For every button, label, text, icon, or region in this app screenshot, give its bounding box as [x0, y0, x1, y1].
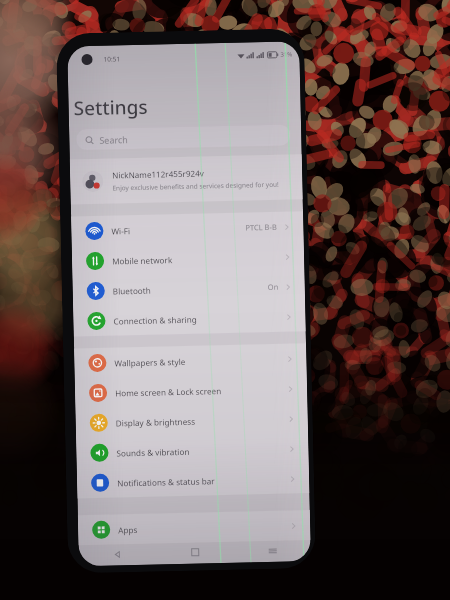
staticText: 10:51	[103, 54, 121, 64]
staticText: Apps	[118, 524, 138, 535]
button[interactable]: Connection & sharing	[73, 301, 306, 336]
button[interactable]: Mobile network	[72, 241, 304, 276]
staticText: Enjoy exclusive benefits and services de…	[112, 180, 279, 192]
button[interactable]: Wi-Fi	[71, 211, 304, 246]
button[interactable]: Wallpapers & style	[74, 343, 307, 378]
button[interactable]: Bluetooth	[72, 271, 305, 306]
staticText: On	[268, 282, 279, 292]
button[interactable]: Home screen & Lock screen	[75, 373, 307, 408]
button[interactable]: Display & brightness	[75, 403, 308, 438]
staticText: Wallpapers & style	[114, 356, 185, 368]
staticText: Settings	[73, 94, 148, 121]
staticText: Wi-Fi	[111, 225, 130, 236]
button[interactable]: Search	[76, 124, 290, 150]
staticText: Search	[99, 133, 128, 146]
button[interactable]: Notifications & status bar	[77, 463, 309, 498]
button[interactable]: Back	[78, 540, 157, 566]
button[interactable]: Sounds & vibration	[76, 433, 309, 468]
staticText: Display & brightness	[116, 416, 196, 428]
staticText: 31%	[280, 50, 293, 59]
staticText: Sounds & vibration	[116, 446, 189, 458]
staticText: NickName112r455r924v	[112, 167, 204, 180]
staticText: PTCL B-B	[245, 222, 277, 232]
staticText: Connection & sharing	[113, 314, 197, 326]
button[interactable]: NickName112r455r924v	[70, 154, 303, 204]
staticText: Home screen & Lock screen	[115, 385, 222, 398]
staticText: Notifications & status bar	[117, 475, 215, 488]
button[interactable]: Apps	[78, 510, 310, 545]
button[interactable]: Home	[156, 538, 234, 564]
button[interactable]: Recent apps	[233, 536, 311, 563]
staticText: Bluetooth	[113, 285, 151, 297]
staticText: Mobile network	[112, 254, 173, 266]
